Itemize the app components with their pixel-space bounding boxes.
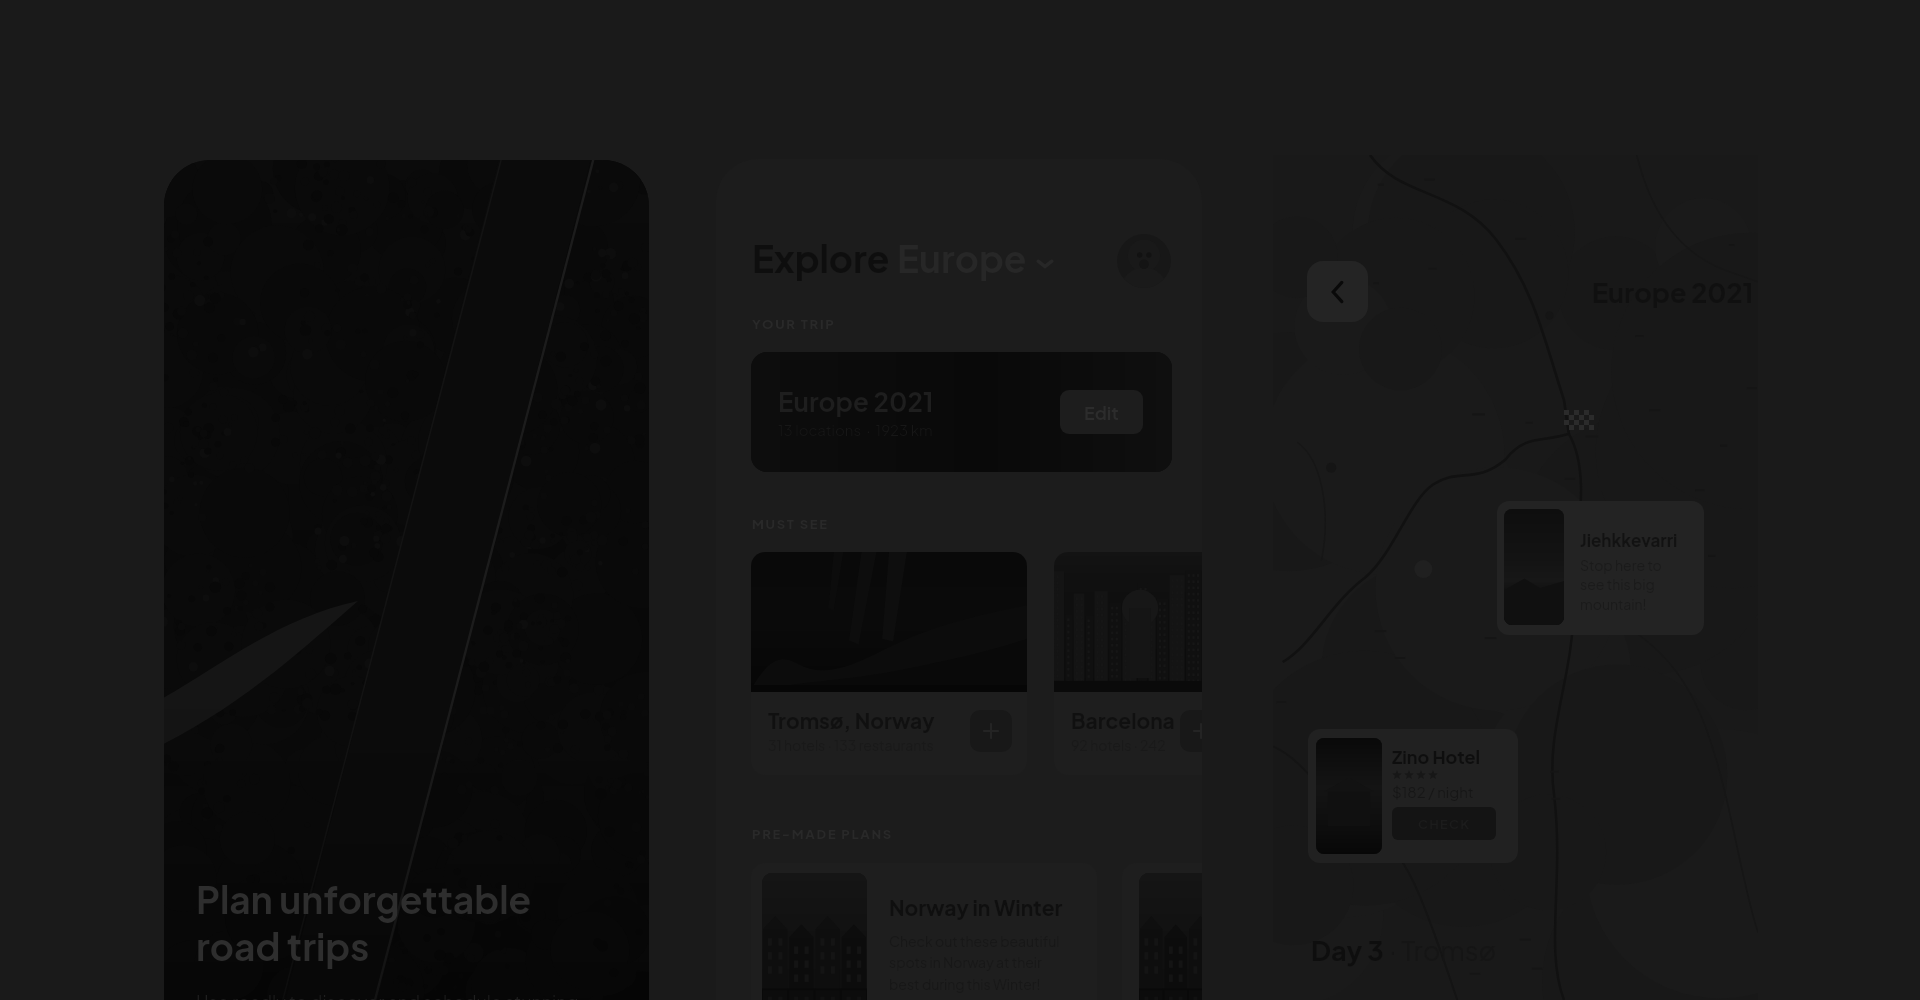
staticText: Jiehkkevarri <box>1580 529 1678 550</box>
button[interactable]: Edit <box>1060 390 1143 434</box>
button[interactable]: Barcelona, Spain <box>1054 552 1202 775</box>
staticText: Barcelona, Spain <box>1071 707 1180 733</box>
staticText: Europe 2021 <box>778 385 934 418</box>
staticText: Day 3 <box>1311 933 1389 967</box>
button[interactable]: Norway in Winter <box>751 863 1097 1000</box>
button[interactable]: Tromsø, Norway <box>751 552 1027 775</box>
staticText: Europe 2021 <box>1592 275 1754 309</box>
staticText: MUST SEE <box>752 516 829 532</box>
staticText: Edit <box>1084 401 1119 424</box>
staticText: PRE-MADE PLANS <box>752 826 893 842</box>
button[interactable]: More pre-made plans <box>1122 863 1202 1000</box>
staticText: Use roadly to discover and schedule stun… <box>196 990 620 1000</box>
staticText: $182 / night <box>1392 782 1474 801</box>
staticText: road trips <box>196 923 370 970</box>
staticText: YOUR TRIP <box>752 316 836 332</box>
button[interactable]: Explore <box>752 235 1054 282</box>
button[interactable]: Jiehkkevarri <box>1497 501 1704 635</box>
button[interactable]: Europe 2021 <box>751 352 1172 472</box>
staticText: Plan unforgettable <box>196 876 532 923</box>
staticText: Zino Hotel <box>1392 745 1481 768</box>
staticText: Explore <box>752 235 897 282</box>
staticText: Tromsø, Norway <box>768 707 935 733</box>
button[interactable]: Back <box>1307 261 1368 322</box>
button[interactable]: Zino Hotel <box>1308 729 1518 863</box>
staticText: Norway in Winter <box>889 894 1063 920</box>
staticText: Europe <box>897 235 1027 282</box>
